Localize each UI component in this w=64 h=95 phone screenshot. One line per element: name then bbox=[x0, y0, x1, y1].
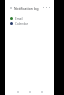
staticText: Email bbox=[15, 17, 23, 21]
button[interactable]: Home bbox=[24, 88, 36, 95]
button[interactable]: Navigate up bbox=[8, 5, 13, 10]
button[interactable]: Search bbox=[41, 5, 45, 9]
button[interactable]: Calendar bbox=[5, 21, 54, 26]
button[interactable]: Recent apps bbox=[36, 88, 48, 95]
staticText: Notification log bbox=[14, 6, 39, 11]
button[interactable]: Back bbox=[11, 88, 24, 95]
button[interactable]: More options bbox=[47, 5, 51, 9]
button[interactable]: Filter bbox=[44, 5, 48, 9]
staticText: Calendar bbox=[15, 22, 29, 26]
button[interactable]: Email bbox=[5, 16, 54, 21]
